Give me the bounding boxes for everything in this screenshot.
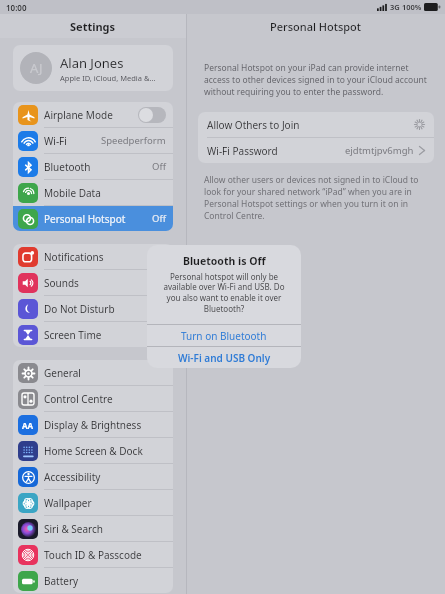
- staticText: Siri & Search: [44, 522, 166, 536]
- button[interactable]: Accessibility: [13, 464, 173, 490]
- staticText: Settings: [70, 19, 116, 34]
- staticText: Bluetooth is Off: [183, 254, 266, 268]
- staticText: Control Centre: [44, 392, 166, 406]
- staticText: Allow Others to Join: [207, 118, 414, 132]
- button[interactable]: Battery: [13, 568, 173, 593]
- staticText: AA: [22, 420, 34, 431]
- button[interactable]: AA: [13, 412, 173, 438]
- button[interactable]: Wi-Fi Password: [198, 138, 434, 163]
- button[interactable]: Wi-Fi and USB Only: [147, 347, 301, 368]
- staticText: Apple ID, iCloud, Media &...: [60, 73, 156, 83]
- button[interactable]: Personal Hotspot: [13, 206, 173, 231]
- staticText: 10:00: [6, 2, 27, 13]
- staticText: Personal Hotspot on your iPad can provid…: [204, 62, 428, 98]
- staticText: Airplane Mode: [44, 108, 138, 122]
- button[interactable]: Wallpaper: [13, 490, 173, 516]
- button[interactable]: Touch ID & Passcode: [13, 542, 173, 568]
- staticText: Battery: [44, 574, 166, 588]
- staticText: Allow other users or devices not signed …: [204, 174, 428, 222]
- staticText: Do Not Disturb: [44, 302, 166, 316]
- staticText: Sounds: [44, 276, 166, 290]
- staticText: Wi-Fi Password: [207, 144, 345, 158]
- staticText: Speedperform: [101, 134, 166, 147]
- button[interactable]: Do Not Disturb: [13, 296, 173, 322]
- button[interactable]: Allow Others to Join: [198, 112, 434, 137]
- staticText: Personal Hotspot: [44, 212, 152, 226]
- staticText: General: [44, 366, 166, 380]
- staticText: 100%: [402, 2, 422, 12]
- button[interactable]: General: [13, 360, 173, 386]
- staticText: Personal Hotspot: [270, 19, 362, 34]
- button[interactable]: Siri & Search: [13, 516, 173, 542]
- staticText: Off: [152, 160, 166, 173]
- staticText: Bluetooth: [44, 160, 152, 174]
- staticText: Display & Brightness: [44, 418, 166, 432]
- staticText: Mobile Data: [44, 186, 166, 200]
- staticText: Personal hotspot will only be available …: [157, 271, 291, 315]
- button[interactable]: Bluetooth: [13, 154, 173, 180]
- staticText: Accessibility: [44, 470, 166, 484]
- button[interactable]: Notifications: [13, 244, 173, 270]
- staticText: Off: [152, 212, 166, 225]
- staticText: Home Screen & Dock: [44, 444, 166, 458]
- staticText: ejdtmtjpv6mgh: [345, 144, 414, 157]
- button[interactable]: Control Centre: [13, 386, 173, 412]
- button[interactable]: Wi-Fi: [13, 128, 173, 154]
- staticText: Wi-Fi: [44, 134, 101, 148]
- staticText: Touch ID & Passcode: [44, 548, 166, 562]
- staticText: 3G: [390, 2, 400, 12]
- staticText: Turn on Bluetooth: [181, 329, 267, 343]
- staticText: Wallpaper: [44, 496, 166, 510]
- button[interactable]: Airplane Mode: [13, 102, 173, 128]
- staticText: AJ: [30, 59, 43, 77]
- staticText: Alan Jones: [60, 54, 124, 72]
- staticText: Screen Time: [44, 328, 166, 342]
- button[interactable]: Sounds: [13, 270, 173, 296]
- staticText: Wi-Fi and USB Only: [178, 351, 271, 365]
- button[interactable]: Home Screen & Dock: [13, 438, 173, 464]
- button[interactable]: Airplane Mode toggle: [138, 107, 166, 123]
- button[interactable]: Screen Time: [13, 322, 173, 347]
- button[interactable]: Turn on Bluetooth: [147, 325, 301, 346]
- button[interactable]: Mobile Data: [13, 180, 173, 206]
- staticText: Notifications: [44, 250, 166, 264]
- button[interactable]: AJ: [13, 45, 173, 91]
